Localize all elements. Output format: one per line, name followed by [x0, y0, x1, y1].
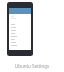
- button[interactable]: [9, 23, 31, 26]
- staticText: Ubuntu Settings: [0, 63, 64, 69]
- button[interactable]: [9, 35, 31, 38]
- button[interactable]: [9, 44, 31, 47]
- button[interactable]: [9, 15, 31, 19]
- button[interactable]: [9, 32, 31, 35]
- button[interactable]: [9, 41, 31, 44]
- button[interactable]: [9, 38, 31, 41]
- button[interactable]: [9, 26, 31, 29]
- button[interactable]: [9, 29, 31, 32]
